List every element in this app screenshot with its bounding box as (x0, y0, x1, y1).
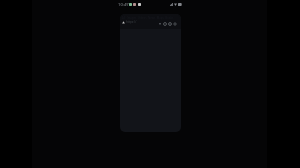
button[interactable]: Tabs (173, 22, 177, 26)
button[interactable]: Share (158, 22, 162, 26)
button[interactable]: Account (168, 22, 172, 26)
button[interactable]: Site information (122, 21, 125, 24)
button[interactable]: Reload (163, 22, 167, 26)
staticText: https://www.example.co (126, 20, 151, 24)
staticText: 10:47 (118, 2, 129, 8)
